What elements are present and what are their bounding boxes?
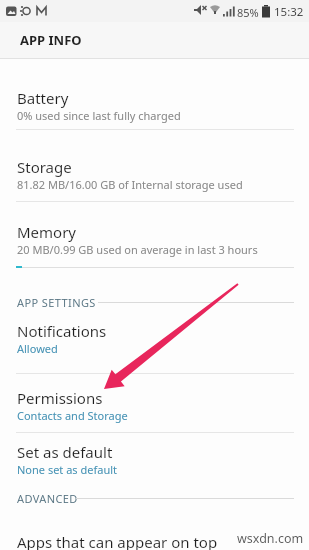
staticText: Battery [17, 88, 69, 108]
button[interactable]: Notifications [0, 321, 309, 363]
staticText: 81.82 MB/16.00 GB of Internal storage us… [17, 177, 243, 192]
staticText: Contacts and Storage [17, 408, 128, 423]
staticText: 20 MB/0.99 GB used on average in last 3 … [17, 242, 258, 257]
staticText: APP SETTINGS [17, 295, 96, 310]
button[interactable]: Apps that can appear on top [0, 530, 309, 550]
button[interactable]: Storage [0, 157, 309, 199]
staticText: None set as default [17, 462, 118, 477]
button[interactable]: Battery [0, 88, 309, 130]
staticText: Storage [17, 157, 72, 177]
staticText: Notifications [17, 321, 107, 341]
staticText: 15:32 [274, 4, 304, 20]
button[interactable]: Memory [0, 222, 309, 264]
staticText: Permissions [17, 388, 103, 408]
staticText: APP INFO [20, 31, 82, 49]
staticText: Allowed [17, 341, 58, 356]
button[interactable]: Permissions [0, 388, 309, 430]
button[interactable]: APP INFO [0, 22, 309, 58]
staticText: ADVANCED [17, 491, 78, 506]
staticText: 85% [237, 5, 259, 20]
staticText: wsxdn.com [237, 530, 304, 547]
button[interactable]: Set as default [0, 442, 309, 484]
staticText: Memory [17, 222, 77, 242]
staticText: Set as default [17, 442, 113, 462]
staticText: Apps that can appear on top [17, 532, 218, 550]
staticText: 0% used since last fully charged [17, 108, 181, 123]
